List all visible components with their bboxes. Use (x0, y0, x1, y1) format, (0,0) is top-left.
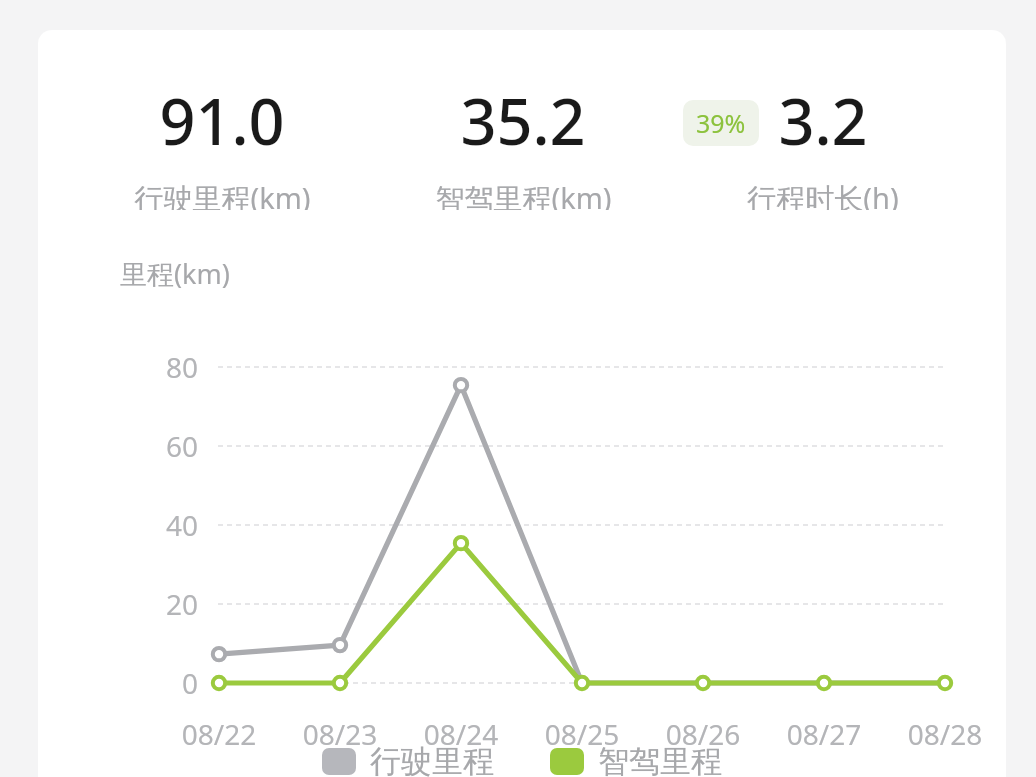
staticText: 里程(km) (120, 255, 230, 292)
staticText: 08/27 (754, 715, 894, 753)
button[interactable]: 91.0 (72, 30, 372, 210)
staticText: 60 (134, 427, 198, 465)
staticText: 35.2 (460, 78, 586, 164)
staticText: 20 (134, 585, 198, 623)
staticText: 08/26 (633, 715, 773, 753)
staticText: 行程时长(h) (747, 178, 899, 210)
staticText: 行驶里程(km) (134, 178, 311, 210)
button[interactable]: 3.2 (673, 30, 973, 210)
staticText: 08/24 (391, 715, 531, 753)
staticText: 08/22 (149, 715, 289, 753)
staticText: 3.2 (778, 78, 868, 164)
button[interactable]: 35.2 (373, 30, 673, 210)
staticText: 40 (134, 506, 198, 544)
staticText: 08/28 (875, 715, 1006, 753)
staticText: 39% (696, 106, 746, 140)
staticText: 91.0 (159, 78, 285, 164)
staticText: 08/23 (270, 715, 410, 753)
staticText: 智驾里程 (598, 742, 722, 777)
button[interactable]: 行驶里程 (322, 742, 494, 777)
staticText: 0 (134, 664, 198, 702)
staticText: 08/25 (512, 715, 652, 753)
staticText: 80 (134, 348, 198, 386)
button[interactable]: 智驾里程 (550, 742, 722, 777)
staticText: 行驶里程 (370, 742, 494, 777)
staticText: 智驾里程(km) (435, 178, 612, 210)
